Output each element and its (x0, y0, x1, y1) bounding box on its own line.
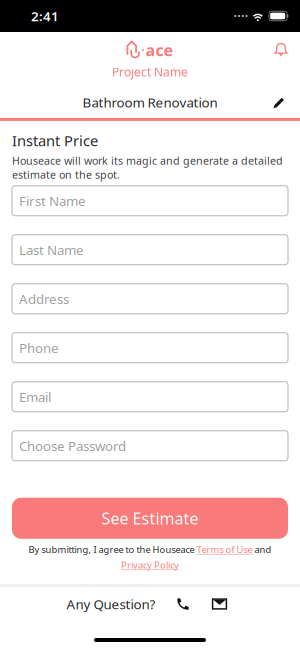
staticText: By submitting, I agree to the Houseace (28, 543, 196, 556)
button[interactable]: Phone (12, 333, 288, 363)
button[interactable]: Privacy Policy (121, 559, 179, 571)
staticText: Email (19, 388, 51, 406)
staticText: See Estimate (101, 508, 198, 529)
button[interactable]: Edit project name (266, 90, 292, 114)
staticText: Bathroom Renovation (82, 94, 217, 111)
staticText: Project Name (112, 64, 188, 80)
button[interactable]: Choose Password (12, 431, 288, 461)
button[interactable]: Call us (169, 590, 195, 618)
button[interactable]: Email us (205, 590, 233, 618)
button[interactable]: First Name (12, 186, 288, 216)
staticText: Privacy Policy (121, 559, 179, 571)
staticText: Choose Password (19, 437, 126, 455)
button[interactable]: Notifications (266, 36, 296, 62)
staticText: Instant Price (12, 131, 98, 150)
staticText: Last Name (19, 241, 84, 259)
staticText: ace (146, 39, 174, 61)
staticText: Phone (19, 339, 59, 357)
button[interactable]: Last Name (12, 235, 288, 265)
staticText: Houseace will work its magic and generat… (12, 153, 283, 182)
button[interactable]: See Estimate (12, 498, 288, 539)
button[interactable]: Terms of Use (196, 543, 252, 556)
staticText: 2:41 (31, 7, 59, 25)
staticText: Any Question? (66, 595, 155, 613)
staticText: First Name (19, 192, 86, 210)
staticText: and (252, 543, 271, 556)
button[interactable]: Address (12, 284, 288, 314)
staticText: Terms of Use (196, 543, 252, 556)
button[interactable]: Email (12, 382, 288, 412)
staticText: Address (19, 290, 69, 308)
